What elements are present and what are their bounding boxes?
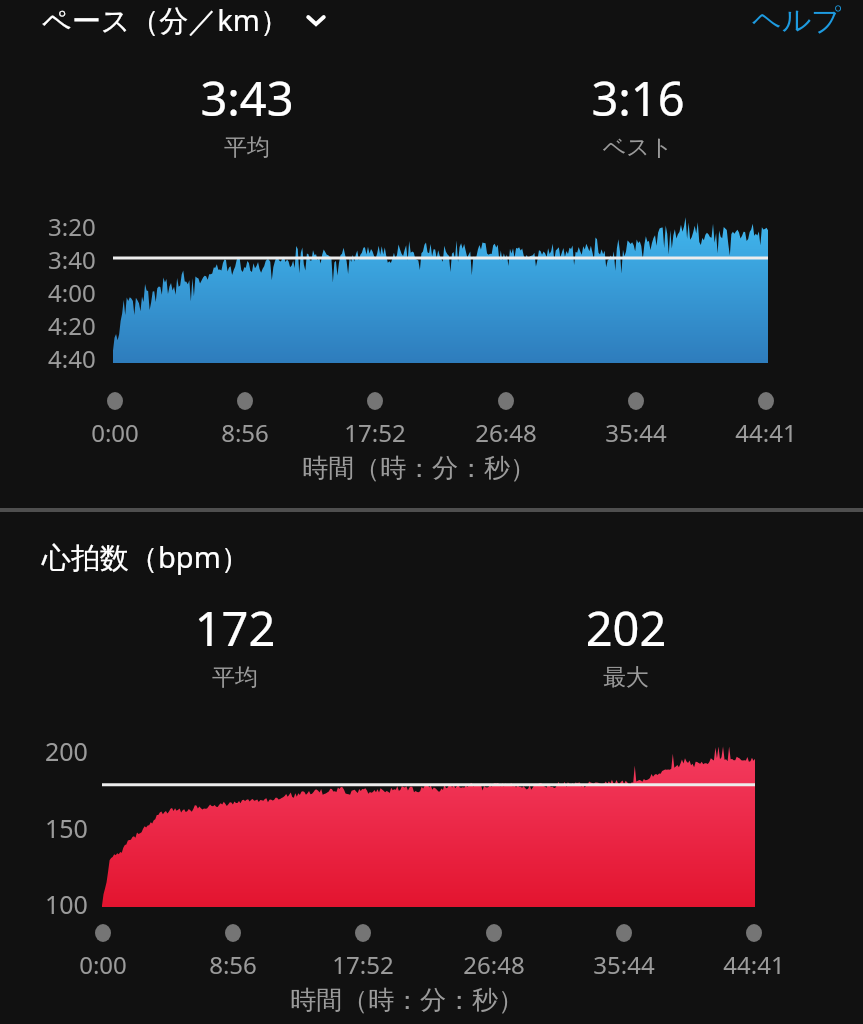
staticText: 202 — [536, 596, 716, 660]
staticText: ヘルプ — [752, 2, 842, 39]
button[interactable]: ペース（分／km） — [42, 0, 331, 40]
staticText: 3:16 — [548, 66, 728, 130]
staticText: 平均 — [157, 133, 337, 162]
staticText: 17:52 — [330, 416, 420, 449]
staticText: 44:41 — [721, 416, 811, 449]
staticText: 8:56 — [200, 416, 290, 449]
staticText: 心拍数（bpm） — [42, 537, 250, 577]
staticText: 26:48 — [449, 948, 539, 981]
other: Expand pace chart — [301, 5, 331, 35]
staticText: 時間（時：分：秒） — [290, 984, 524, 1017]
staticText: 172 — [145, 596, 325, 660]
staticText: 最大 — [536, 663, 716, 692]
staticText: 35:44 — [579, 948, 669, 981]
staticText: 4:40 — [48, 342, 96, 375]
staticText: 時間（時：分：秒） — [302, 452, 536, 485]
staticText: 0:00 — [58, 948, 148, 981]
staticText: 26:48 — [461, 416, 551, 449]
button[interactable]: ヘルプ — [752, 0, 842, 40]
staticText: 150 — [45, 811, 88, 845]
staticText: 3:20 — [48, 210, 96, 243]
staticText: ペース（分／km） — [42, 0, 289, 40]
staticText: 3:43 — [157, 66, 337, 130]
staticText: 17:52 — [318, 948, 408, 981]
staticText: 0:00 — [70, 416, 160, 449]
staticText: 8:56 — [188, 948, 278, 981]
button[interactable]: 心拍数（bpm） — [42, 535, 250, 579]
staticText: 平均 — [145, 663, 325, 692]
staticText: 200 — [45, 734, 88, 768]
staticText: 100 — [45, 887, 88, 921]
staticText: 4:00 — [48, 276, 96, 309]
staticText: ベスト — [548, 133, 728, 162]
staticText: 3:40 — [48, 243, 96, 276]
staticText: 35:44 — [591, 416, 681, 449]
staticText: 4:20 — [48, 309, 96, 342]
staticText: 44:41 — [709, 948, 799, 981]
